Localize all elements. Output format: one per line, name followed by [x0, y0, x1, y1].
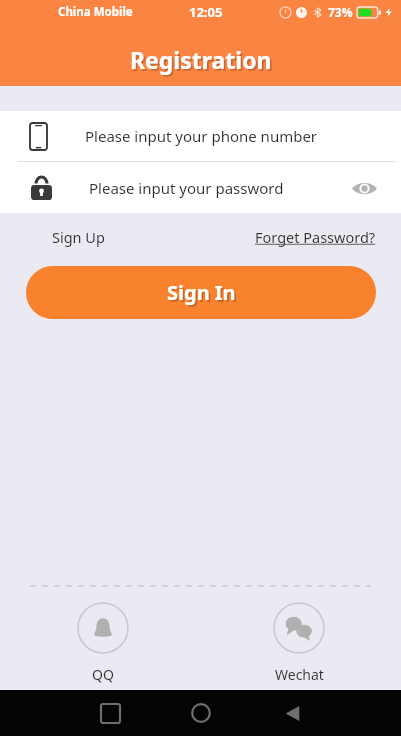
staticText: Please input your phone number	[85, 126, 318, 146]
button[interactable]: Show password	[347, 171, 381, 205]
button[interactable]: Forget Password?	[255, 227, 376, 247]
staticText: Please input your password	[89, 178, 284, 198]
staticText: China Mobile	[58, 4, 133, 20]
staticText: 73%	[328, 4, 353, 20]
button[interactable]: Sign In	[26, 266, 376, 319]
staticText: 12:05	[189, 3, 223, 21]
staticText: Forget Password?	[255, 227, 376, 247]
button[interactable]: Sign Up	[52, 227, 105, 247]
button[interactable]: Please input your password	[0, 162, 401, 213]
button[interactable]: Home	[184, 696, 218, 730]
button[interactable]: Please input your phone number	[0, 111, 401, 161]
staticText: QQ	[92, 665, 114, 684]
staticText: Wechat	[275, 665, 324, 684]
button[interactable]: Back	[275, 696, 309, 730]
button[interactable]: Wechat	[219, 600, 379, 686]
button[interactable]: Recent apps	[93, 696, 127, 730]
staticText: Sign In	[169, 281, 238, 308]
staticText: Registration	[132, 46, 274, 77]
staticText: Registration	[130, 44, 272, 75]
staticText: Sign Up	[52, 227, 105, 247]
button[interactable]: QQ	[23, 600, 183, 686]
staticText: Sign In	[167, 279, 236, 306]
